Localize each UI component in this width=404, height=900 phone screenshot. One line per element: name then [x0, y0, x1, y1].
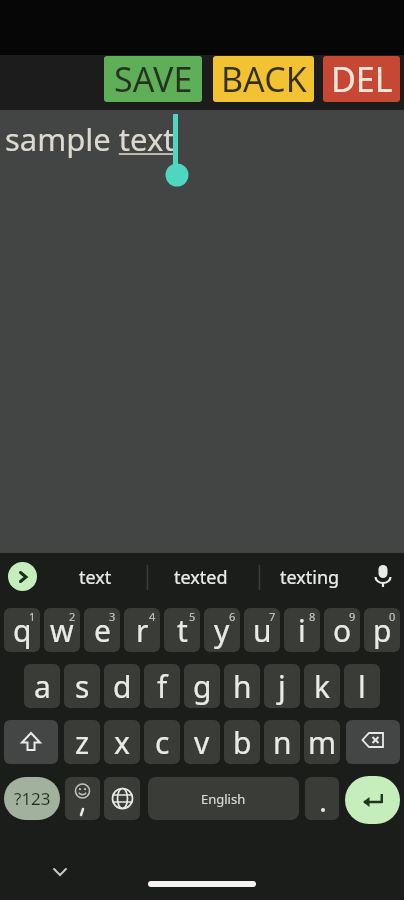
staticText: v — [194, 722, 210, 763]
button[interactable]: b — [224, 720, 260, 764]
button[interactable] — [345, 776, 400, 824]
button[interactable] — [4, 720, 58, 764]
button[interactable]: o — [324, 608, 360, 652]
button[interactable]: a — [24, 664, 60, 708]
button[interactable] — [104, 777, 140, 820]
staticText: k — [314, 666, 331, 707]
staticText: 3 — [109, 609, 116, 624]
button[interactable]: t — [164, 608, 200, 652]
button[interactable]: x — [104, 720, 140, 764]
button[interactable]: c — [144, 720, 180, 764]
staticText: 7 — [269, 609, 276, 624]
button[interactable]: BACK — [213, 56, 314, 102]
button[interactable]: w — [44, 608, 80, 652]
staticText: o — [333, 610, 352, 651]
button[interactable]: k — [304, 664, 340, 708]
staticText: j — [278, 666, 286, 707]
staticText: t — [177, 610, 188, 651]
staticText: u — [253, 610, 272, 651]
staticText: r — [136, 610, 149, 651]
staticText: 0 — [389, 609, 396, 624]
button[interactable]: q — [4, 608, 40, 652]
button[interactable]: m — [304, 720, 340, 764]
button[interactable]: l — [344, 664, 380, 708]
staticText: 6 — [229, 609, 236, 624]
button[interactable]: y — [204, 608, 240, 652]
staticText: l — [358, 666, 366, 707]
staticText: 5 — [189, 609, 196, 624]
button[interactable]: s — [64, 664, 100, 708]
button[interactable]: SAVE — [104, 56, 202, 102]
button[interactable]: n — [264, 720, 300, 764]
staticText: 8 — [309, 609, 316, 624]
staticText: p — [373, 610, 392, 651]
staticText: q — [13, 610, 32, 651]
staticText: BACK — [221, 56, 307, 102]
staticText: d — [113, 666, 132, 707]
staticText: n — [273, 722, 292, 763]
button[interactable]: z — [64, 720, 100, 764]
staticText: z — [75, 722, 90, 763]
button[interactable]: u — [244, 608, 280, 652]
button[interactable]: f — [144, 664, 180, 708]
staticText: 9 — [349, 609, 356, 624]
button[interactable]: j — [264, 664, 300, 708]
staticText: m — [308, 722, 337, 763]
staticText: 1 — [29, 609, 36, 624]
button[interactable]: h — [224, 664, 260, 708]
staticText: x — [114, 722, 130, 763]
staticText: b — [233, 722, 252, 763]
staticText: texting — [280, 565, 340, 590]
staticText: text — [79, 565, 112, 590]
button[interactable]: v — [184, 720, 220, 764]
staticText: a — [34, 666, 51, 707]
button[interactable]: texted — [153, 553, 249, 601]
button[interactable] — [346, 720, 400, 764]
button[interactable]: texting — [262, 553, 358, 601]
staticText: g — [193, 666, 212, 707]
staticText: h — [233, 666, 252, 707]
button[interactable] — [65, 777, 100, 820]
staticText: 2 — [69, 609, 76, 624]
button[interactable]: r — [124, 608, 160, 652]
staticText: sample text — [5, 118, 175, 160]
staticText: ?123 — [14, 787, 51, 810]
staticText: c — [155, 722, 170, 763]
button[interactable]: text — [48, 553, 143, 601]
button[interactable] — [8, 562, 37, 591]
button[interactable] — [305, 777, 339, 820]
button[interactable]: English — [148, 777, 299, 820]
staticText: 4 — [149, 609, 156, 624]
staticText: i — [298, 610, 306, 651]
staticText: English — [201, 790, 246, 808]
staticText: s — [75, 666, 90, 707]
staticText: e — [94, 610, 111, 651]
button[interactable]: g — [184, 664, 220, 708]
button[interactable]: DEL — [323, 56, 400, 102]
staticText: y — [214, 610, 230, 651]
staticText: DEL — [331, 56, 393, 102]
staticText: w — [50, 610, 74, 651]
button[interactable]: i — [284, 608, 320, 652]
staticText: SAVE — [114, 56, 193, 102]
button[interactable]: e — [84, 608, 120, 652]
button[interactable]: ?123 — [4, 777, 60, 820]
button[interactable]: p — [364, 608, 400, 652]
staticText: f — [157, 666, 168, 707]
button[interactable]: d — [104, 664, 140, 708]
staticText: texted — [174, 565, 228, 590]
